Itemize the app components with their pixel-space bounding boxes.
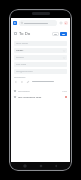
button[interactable]: App menu (13, 21, 17, 25)
button[interactable]: Task notification value (11, 94, 70, 100)
button[interactable] (19, 20, 57, 26)
button[interactable]: Due Date (14, 62, 67, 67)
button[interactable]: Priority (14, 55, 67, 60)
button[interactable]: task@corp.com (14, 69, 67, 74)
staticText: Description (14, 76, 26, 79)
button[interactable]: Align (20, 80, 23, 83)
button[interactable]: Bold (14, 80, 17, 83)
button[interactable]: Item name (14, 41, 67, 46)
button[interactable]: Select (14, 32, 17, 35)
staticText: Owner (16, 49, 24, 52)
staticText: Item name (16, 42, 28, 45)
button[interactable]: Home (39, 164, 43, 168)
button[interactable] (52, 32, 59, 36)
staticText: Task notification value (18, 96, 42, 99)
staticText: 1 of 4 (62, 90, 67, 93)
staticText: T (65, 22, 67, 25)
staticText: Description (18, 90, 30, 93)
button[interactable]: Description (11, 88, 70, 94)
staticText: task@corp.com (16, 70, 33, 73)
staticText: Priority (16, 56, 24, 59)
button[interactable] (60, 32, 67, 36)
staticText: To Do (19, 31, 31, 37)
button[interactable]: Back (54, 164, 58, 168)
button[interactable]: Recents (23, 164, 27, 168)
button[interactable]: Apps (59, 21, 63, 25)
staticText: Due Date (16, 63, 27, 66)
button[interactable]: Link (26, 80, 29, 83)
button[interactable]: Owner (14, 48, 67, 53)
button[interactable]: Account (64, 21, 68, 25)
